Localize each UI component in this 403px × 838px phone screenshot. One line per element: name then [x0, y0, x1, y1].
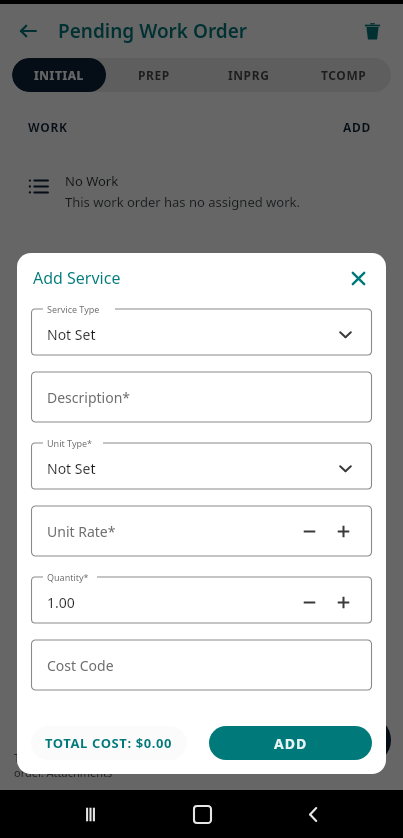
staticText: Not Set — [47, 325, 330, 344]
button[interactable]: Cost Code — [31, 638, 372, 692]
button[interactable]: Select unit type — [330, 453, 360, 483]
button[interactable]: ADD — [339, 115, 375, 139]
staticText: ADD — [274, 734, 308, 753]
staticText: TOTAL COST: $0.00 — [45, 734, 173, 752]
staticText: PREP — [138, 67, 170, 83]
staticText: Not Set — [47, 459, 330, 478]
staticText: Pending Work Order — [58, 18, 355, 44]
button[interactable]: TCOMP — [296, 58, 391, 92]
staticText: Service Type — [47, 303, 100, 315]
button[interactable]: Decrease — [292, 585, 326, 619]
staticText: TCOMP — [321, 67, 367, 83]
button[interactable]: INPRG — [201, 58, 296, 92]
staticText: Quantity* — [47, 571, 89, 583]
staticText: This work order has no assigned work. — [65, 193, 300, 211]
button[interactable]: ADD — [209, 726, 372, 760]
staticText: No Work — [65, 172, 119, 190]
staticText: Unit Type* — [47, 437, 93, 449]
button[interactable]: Delete — [355, 14, 389, 48]
staticText: 1.00 — [47, 593, 292, 612]
staticText: ADD — [343, 119, 371, 135]
button[interactable]: Description* — [31, 370, 372, 424]
staticText: Description* — [47, 388, 360, 407]
staticText: Unit Rate* — [47, 522, 292, 541]
staticText: WORK — [28, 119, 339, 135]
staticText: INITIAL — [34, 67, 84, 83]
staticText: Tap the add buttons above to assign work… — [14, 750, 389, 780]
button[interactable]: TOTAL COST: $0.00 — [31, 726, 187, 760]
button[interactable]: INITIAL — [12, 58, 106, 92]
button[interactable]: Close — [342, 262, 374, 294]
staticText: Add Service — [33, 267, 342, 289]
button[interactable]: Select service type — [330, 319, 360, 349]
staticText: Cost Code — [47, 656, 360, 675]
button[interactable]: Add — [343, 716, 391, 764]
button[interactable]: Home — [181, 793, 223, 835]
button[interactable]: PREP — [106, 58, 201, 92]
button[interactable]: Increase — [326, 585, 360, 619]
button[interactable]: Recent apps — [69, 793, 111, 835]
button[interactable]: Unit Type* — [31, 437, 372, 491]
button[interactable]: Quantity* — [31, 571, 372, 625]
staticText: INPRG — [228, 67, 270, 83]
button[interactable]: Back — [10, 13, 46, 49]
button[interactable]: Increase — [326, 514, 360, 548]
button[interactable]: Unit Rate* — [31, 504, 372, 558]
button[interactable]: Decrease — [292, 514, 326, 548]
button[interactable]: Service Type — [31, 303, 372, 357]
button[interactable]: Back — [292, 793, 334, 835]
